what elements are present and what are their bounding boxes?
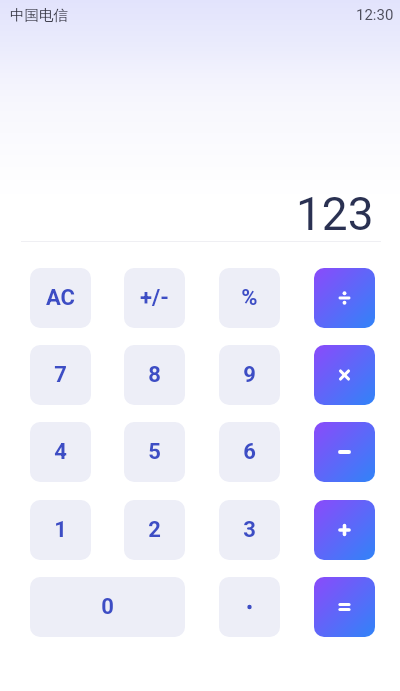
staticText: % (241, 285, 258, 311)
staticText: 3 (243, 517, 256, 543)
button[interactable]: AC (30, 268, 91, 328)
staticText: AC (46, 285, 75, 311)
button[interactable]: Multiply (314, 345, 375, 405)
button[interactable]: +/- (124, 268, 185, 328)
button[interactable]: 5 (124, 422, 185, 482)
button[interactable]: Subtract (314, 422, 375, 482)
button[interactable]: 6 (219, 422, 280, 482)
staticText: 2 (148, 517, 161, 543)
button[interactable]: 8 (124, 345, 185, 405)
button[interactable]: 0 (30, 577, 185, 637)
button[interactable]: 9 (219, 345, 280, 405)
button[interactable]: Divide (314, 268, 375, 328)
button[interactable]: Add (314, 500, 375, 560)
staticText: 5 (148, 439, 161, 465)
button[interactable]: 7 (30, 345, 91, 405)
button[interactable]: % (219, 268, 280, 328)
button[interactable]: 2 (124, 500, 185, 560)
button[interactable]: Equals (314, 577, 375, 637)
staticText: +/- (140, 285, 169, 311)
staticText: 7 (54, 362, 67, 388)
button[interactable]: 4 (30, 422, 91, 482)
staticText: 4 (54, 439, 67, 465)
staticText: 12:30 (356, 6, 394, 24)
staticText: 0 (101, 594, 114, 620)
staticText: 6 (243, 439, 256, 465)
button[interactable] (219, 577, 280, 637)
button[interactable]: 3 (219, 500, 280, 560)
staticText: 1 (54, 517, 67, 543)
staticText: 8 (148, 362, 161, 388)
staticText: 123 (296, 187, 374, 241)
button[interactable]: 1 (30, 500, 91, 560)
staticText: 9 (243, 362, 256, 388)
staticText: 中国电信 (10, 6, 68, 24)
